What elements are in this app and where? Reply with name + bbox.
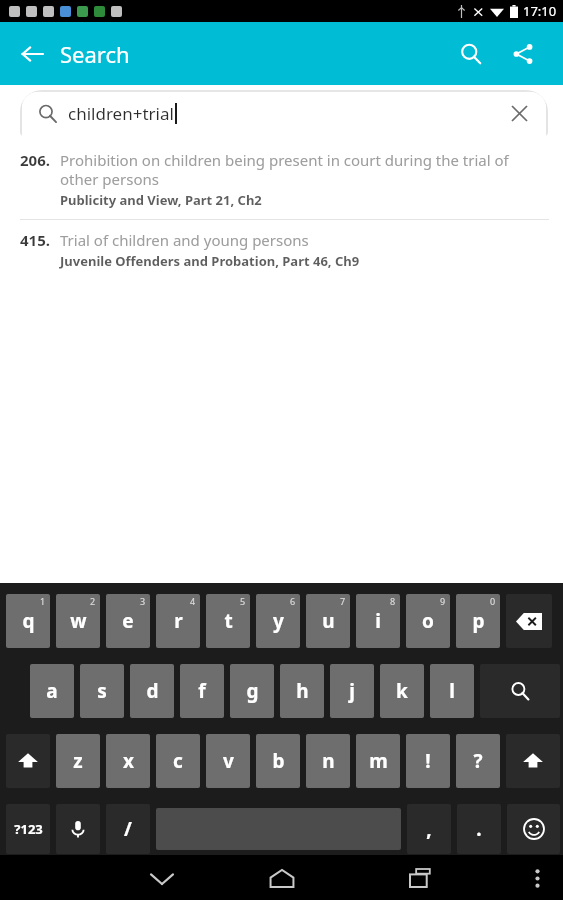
staticText: Trial of children and young persons <box>60 230 309 250</box>
staticText: x <box>123 748 134 774</box>
staticText: . <box>476 816 482 842</box>
button[interactable]: ! <box>406 734 450 788</box>
staticText: h <box>296 678 309 704</box>
staticText: r <box>174 608 183 634</box>
button[interactable]: n <box>306 734 350 788</box>
button[interactable]: l <box>430 664 474 718</box>
staticText: t <box>224 608 233 634</box>
button[interactable]: j <box>330 664 374 718</box>
button[interactable]: Search <box>449 32 493 76</box>
staticText: 8 <box>390 595 396 607</box>
button[interactable]: . <box>457 804 501 854</box>
button[interactable]: Shift <box>6 734 50 788</box>
button[interactable]: w <box>56 594 100 648</box>
staticText: p <box>472 608 485 634</box>
staticText: ? <box>473 748 483 774</box>
button[interactable]: p <box>456 594 500 648</box>
button[interactable]: Backspace <box>506 594 552 648</box>
button[interactable]: x <box>106 734 150 788</box>
staticText: b <box>272 748 285 774</box>
button[interactable]: q <box>6 594 50 648</box>
button[interactable]: c <box>156 734 200 788</box>
button[interactable]: h <box>280 664 324 718</box>
staticText: w <box>70 608 87 634</box>
staticText: j <box>349 678 355 704</box>
button[interactable]: Microphone <box>56 804 100 854</box>
button[interactable]: Hide keyboard <box>140 856 184 900</box>
button[interactable]: ? <box>456 734 500 788</box>
staticText: 6 <box>290 595 296 607</box>
button[interactable]: y <box>256 594 300 648</box>
button[interactable]: children+trial <box>20 90 548 136</box>
button[interactable]: Recents <box>399 856 443 900</box>
staticText: g <box>246 678 259 704</box>
staticText: 3 <box>140 595 146 607</box>
button[interactable]: o <box>406 594 450 648</box>
staticText: Search <box>60 39 130 69</box>
staticText: e <box>122 608 134 634</box>
staticText: f <box>198 678 206 704</box>
button[interactable]: g <box>230 664 274 718</box>
button[interactable]: Share <box>501 32 545 76</box>
button[interactable]: Home <box>260 856 304 900</box>
staticText: l <box>449 678 455 704</box>
button[interactable]: f <box>180 664 224 718</box>
staticText: z <box>73 748 83 774</box>
staticText: v <box>223 748 234 774</box>
staticText: a <box>46 678 58 704</box>
button[interactable]: Search key <box>480 664 560 718</box>
staticText: k <box>396 678 408 704</box>
button[interactable]: k <box>380 664 424 718</box>
staticText: 7 <box>340 595 346 607</box>
button[interactable]: s <box>80 664 124 718</box>
button[interactable]: Clear <box>504 98 534 128</box>
button[interactable]: ?123 <box>6 804 50 854</box>
staticText: 206. <box>20 150 60 170</box>
button[interactable]: 415. <box>0 220 563 280</box>
button[interactable]: Emoji <box>507 804 560 854</box>
staticText: ?123 <box>14 820 43 838</box>
button[interactable]: z <box>56 734 100 788</box>
button[interactable]: Back <box>12 34 52 74</box>
staticText: 9 <box>440 595 446 607</box>
staticText: n <box>322 748 335 774</box>
button[interactable]: , <box>407 804 451 854</box>
staticText: children+trial <box>68 102 174 125</box>
button[interactable]: b <box>256 734 300 788</box>
staticText: q <box>22 608 35 634</box>
staticText: s <box>97 678 107 704</box>
button[interactable]: u <box>306 594 350 648</box>
staticText: 0 <box>490 595 496 607</box>
staticText: i <box>375 608 381 634</box>
button[interactable]: m <box>356 734 400 788</box>
button[interactable]: i <box>356 594 400 648</box>
button[interactable]: Shift <box>506 734 560 788</box>
staticText: Publicity and View, Part 21, Ch2 <box>60 191 262 209</box>
staticText: Prohibition on children being present in… <box>60 150 545 189</box>
button[interactable]: v <box>206 734 250 788</box>
staticText: m <box>369 748 388 774</box>
button[interactable]: e <box>106 594 150 648</box>
button[interactable]: a <box>30 664 74 718</box>
staticText: 5 <box>240 595 246 607</box>
staticText: y <box>273 608 284 634</box>
staticText: , <box>426 816 432 842</box>
staticText: c <box>173 748 183 774</box>
button[interactable]: r <box>156 594 200 648</box>
staticText: 4 <box>190 595 196 607</box>
staticText: 415. <box>20 230 60 250</box>
staticText: 17:10 <box>523 2 557 20</box>
staticText: / <box>124 816 132 842</box>
staticText: ! <box>425 748 431 774</box>
staticText: d <box>146 678 159 704</box>
staticText: Juvenile Offenders and Probation, Part 4… <box>60 252 360 270</box>
button[interactable]: d <box>130 664 174 718</box>
button[interactable]: t <box>206 594 250 648</box>
staticText: u <box>322 608 335 634</box>
button[interactable]: 206. <box>0 140 563 219</box>
staticText: 1 <box>40 595 46 607</box>
button[interactable]: / <box>106 804 150 854</box>
staticText: o <box>422 608 434 634</box>
button[interactable]: More options <box>519 860 555 896</box>
